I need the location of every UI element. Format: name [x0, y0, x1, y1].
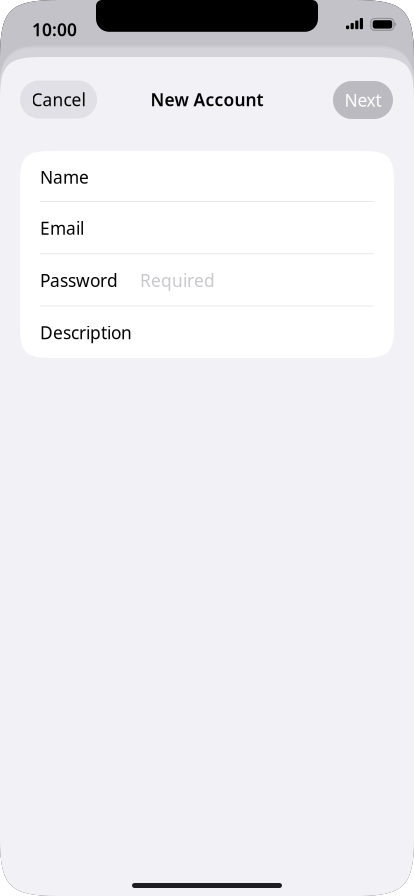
staticText: New Account: [150, 88, 263, 111]
staticText: Name: [40, 165, 89, 188]
staticText: Email: [40, 216, 84, 239]
button[interactable]: Name: [20, 151, 394, 203]
button[interactable]: Email: [20, 202, 394, 254]
staticText: Description: [40, 321, 132, 344]
button[interactable]: Password: [20, 254, 394, 306]
staticText: Required: [140, 269, 215, 292]
staticText: Next: [344, 88, 381, 111]
button[interactable]: Next: [333, 81, 393, 119]
staticText: Password: [40, 269, 118, 292]
button[interactable]: Description: [20, 306, 394, 358]
button[interactable]: Cancel: [20, 80, 97, 118]
staticText: 10:00: [32, 18, 77, 41]
staticText: Cancel: [31, 88, 85, 111]
